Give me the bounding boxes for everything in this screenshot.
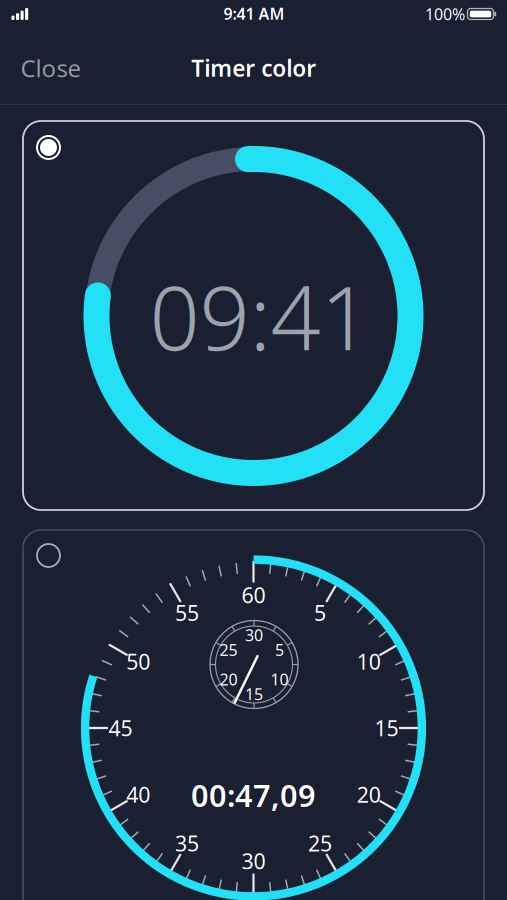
staticText: 10: [357, 647, 381, 676]
staticText: 25: [219, 639, 237, 660]
staticText: 25: [308, 829, 332, 857]
staticText: 09:41: [149, 258, 370, 374]
staticText: 20: [219, 669, 237, 690]
staticText: 100%: [425, 3, 465, 25]
staticText: 55: [175, 599, 199, 627]
staticText: 5: [275, 639, 284, 660]
staticText: 30: [241, 847, 265, 875]
staticText: Close: [20, 52, 81, 84]
staticText: 40: [126, 780, 150, 809]
staticText: 10: [270, 669, 288, 690]
staticText: 50: [126, 647, 150, 676]
staticText: 20: [357, 780, 381, 809]
staticText: 15: [245, 683, 263, 705]
staticText: 45: [108, 714, 132, 742]
button[interactable]: Digital timer color: [23, 121, 484, 510]
button[interactable]: Analog stopwatch color: [23, 530, 484, 900]
staticText: 5: [314, 599, 326, 627]
staticText: Timer color: [191, 53, 316, 83]
staticText: 15: [374, 714, 398, 742]
staticText: 30: [245, 624, 263, 646]
button[interactable]: Close: [20, 52, 81, 84]
staticText: 60: [241, 581, 265, 609]
staticText: 9:41 AM: [223, 3, 284, 24]
staticText: 00:47,09: [191, 775, 316, 815]
staticText: 35: [175, 829, 199, 857]
